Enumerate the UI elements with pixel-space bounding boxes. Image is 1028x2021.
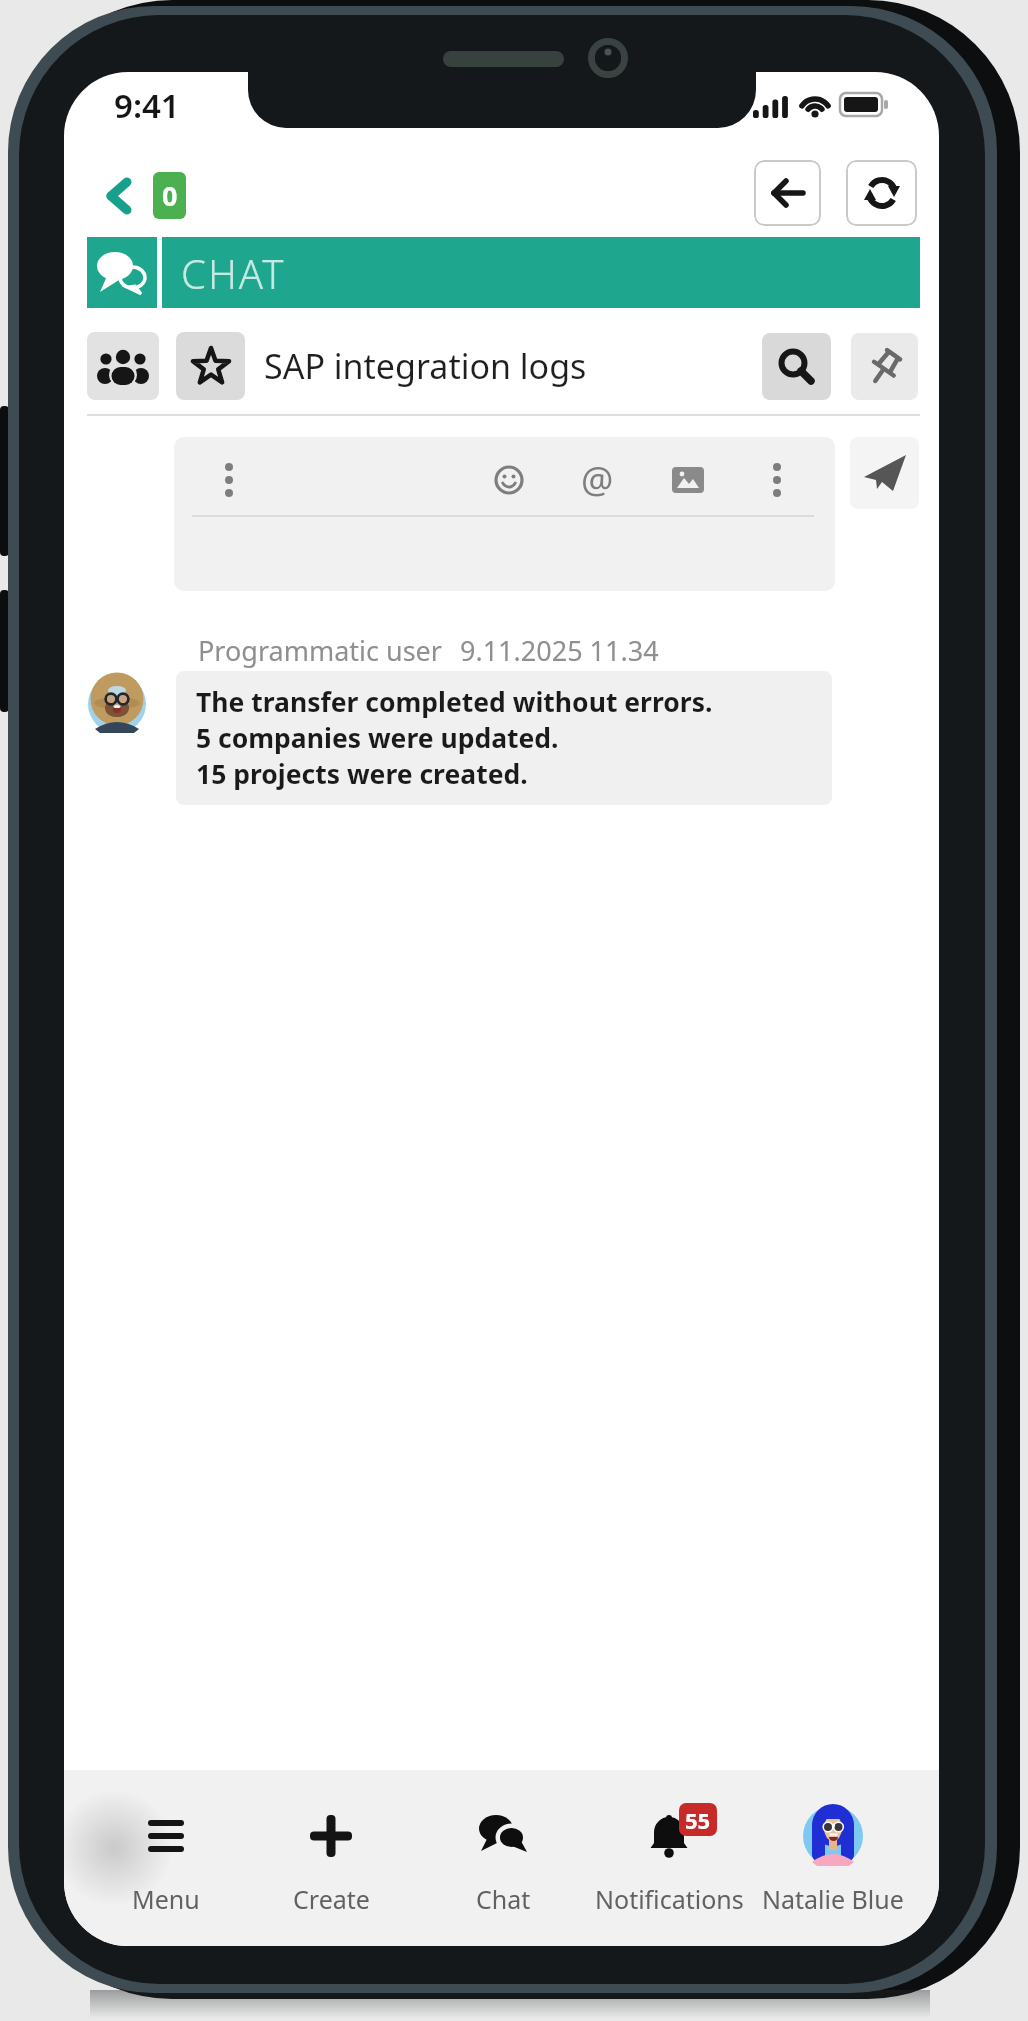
- button[interactable]: Create: [251, 1770, 411, 1946]
- button[interactable]: [760, 458, 794, 502]
- button[interactable]: 0: [94, 167, 194, 225]
- button[interactable]: [212, 458, 246, 502]
- button[interactable]: Natalie Blue: [753, 1770, 913, 1946]
- button[interactable]: Chat: [423, 1770, 583, 1946]
- button[interactable]: [668, 460, 708, 500]
- button[interactable]: @: [577, 455, 617, 503]
- staticText: CHAT: [181, 246, 286, 300]
- button[interactable]: [851, 333, 918, 400]
- button[interactable]: Notifications: [589, 1770, 749, 1946]
- button[interactable]: [846, 160, 917, 226]
- button[interactable]: [754, 160, 821, 226]
- staticText: SAP integration logs: [264, 343, 587, 389]
- button[interactable]: [176, 332, 245, 400]
- staticText: 15 projects were created.: [196, 756, 528, 792]
- staticText: Create: [293, 1882, 370, 1916]
- button[interactable]: Menu: [86, 1770, 246, 1946]
- staticText: @: [581, 455, 614, 503]
- staticText: Natalie Blue: [762, 1882, 904, 1916]
- staticText: 9.11.2025 11.34: [460, 632, 659, 668]
- staticText: Menu: [132, 1882, 200, 1916]
- staticText: 55: [685, 1805, 711, 1835]
- staticText: 5 companies were updated.: [196, 720, 559, 756]
- staticText: Notifications: [595, 1882, 744, 1916]
- staticText: 9:41: [114, 83, 180, 128]
- button[interactable]: [489, 460, 529, 500]
- button[interactable]: [762, 333, 831, 400]
- button[interactable]: [87, 332, 159, 400]
- staticText: Programmatic user: [198, 632, 442, 668]
- staticText: 0: [162, 177, 178, 214]
- staticText: Chat: [476, 1882, 531, 1916]
- button[interactable]: [850, 437, 919, 509]
- staticText: The transfer completed without errors.: [196, 684, 713, 720]
